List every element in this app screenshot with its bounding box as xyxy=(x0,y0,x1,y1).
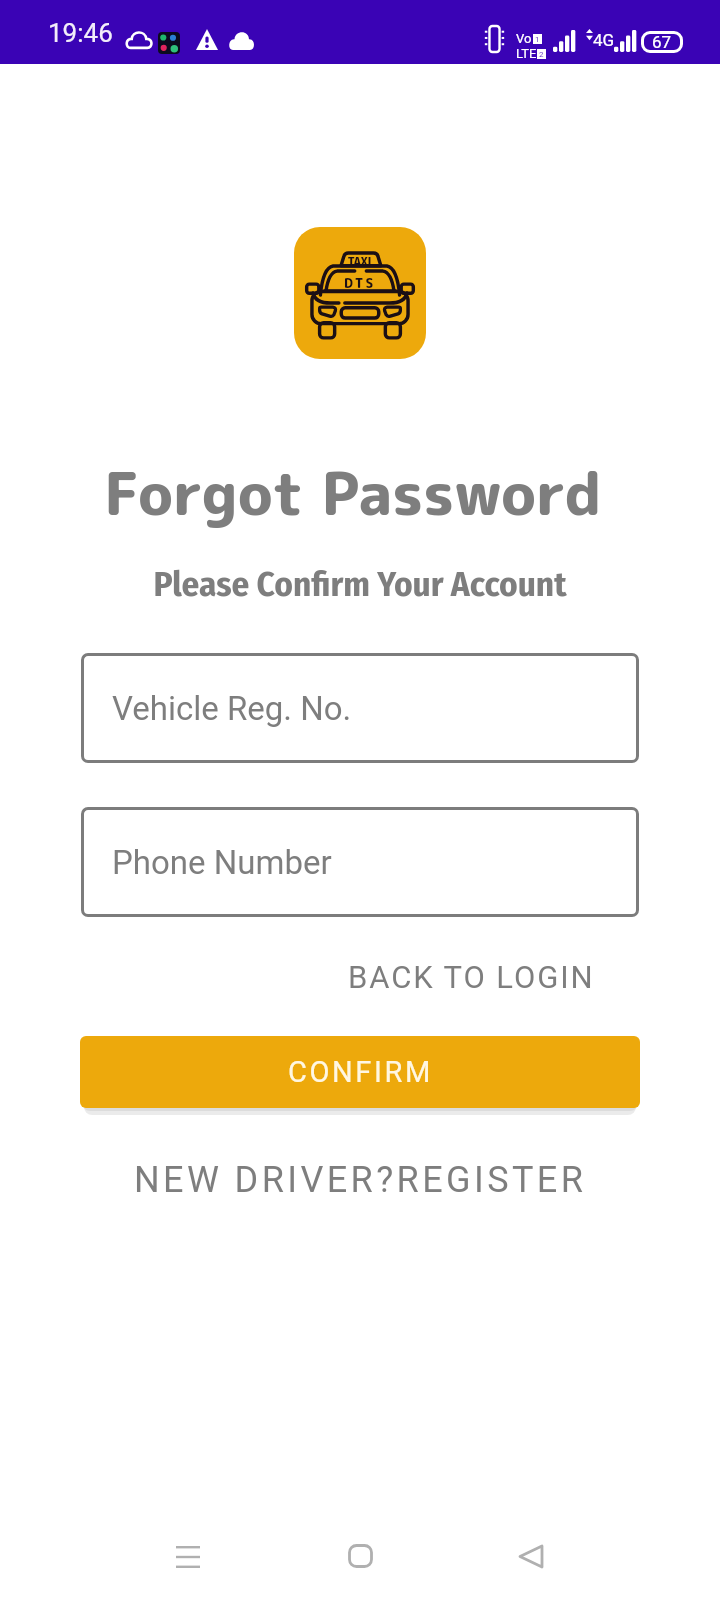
staticText: CONFIRM xyxy=(288,1055,433,1089)
staticText: Vo xyxy=(516,31,532,46)
button[interactable]: Back xyxy=(472,1490,588,1600)
staticText: 2 xyxy=(539,50,544,59)
staticText: 19:46 xyxy=(48,18,113,48)
staticText: TAXI xyxy=(348,254,372,270)
staticText: LTE xyxy=(516,46,537,61)
button[interactable]: Vehicle Reg. No. xyxy=(81,653,639,763)
button[interactable]: NEW DRIVER?REGISTER xyxy=(130,1153,591,1207)
staticText: 1 xyxy=(535,35,540,44)
button[interactable]: Phone Number xyxy=(81,807,639,917)
staticText: BACK TO LOGIN xyxy=(348,959,595,995)
button[interactable]: Recent apps xyxy=(130,1490,246,1600)
staticText: Forgot Password xyxy=(0,452,713,534)
button[interactable]: Home xyxy=(302,1490,418,1600)
staticText: NEW DRIVER?REGISTER xyxy=(134,1159,587,1201)
staticText: Phone Number xyxy=(112,843,332,882)
button[interactable]: BACK TO LOGIN xyxy=(344,953,599,1001)
staticText: Vehicle Reg. No. xyxy=(112,689,352,728)
staticText: Please Confirm Your Account xyxy=(0,563,720,605)
button[interactable]: CONFIRM xyxy=(80,1036,640,1108)
staticText: DTS xyxy=(344,274,376,292)
staticText: 67 xyxy=(652,32,672,52)
staticText: 4G xyxy=(593,30,615,50)
